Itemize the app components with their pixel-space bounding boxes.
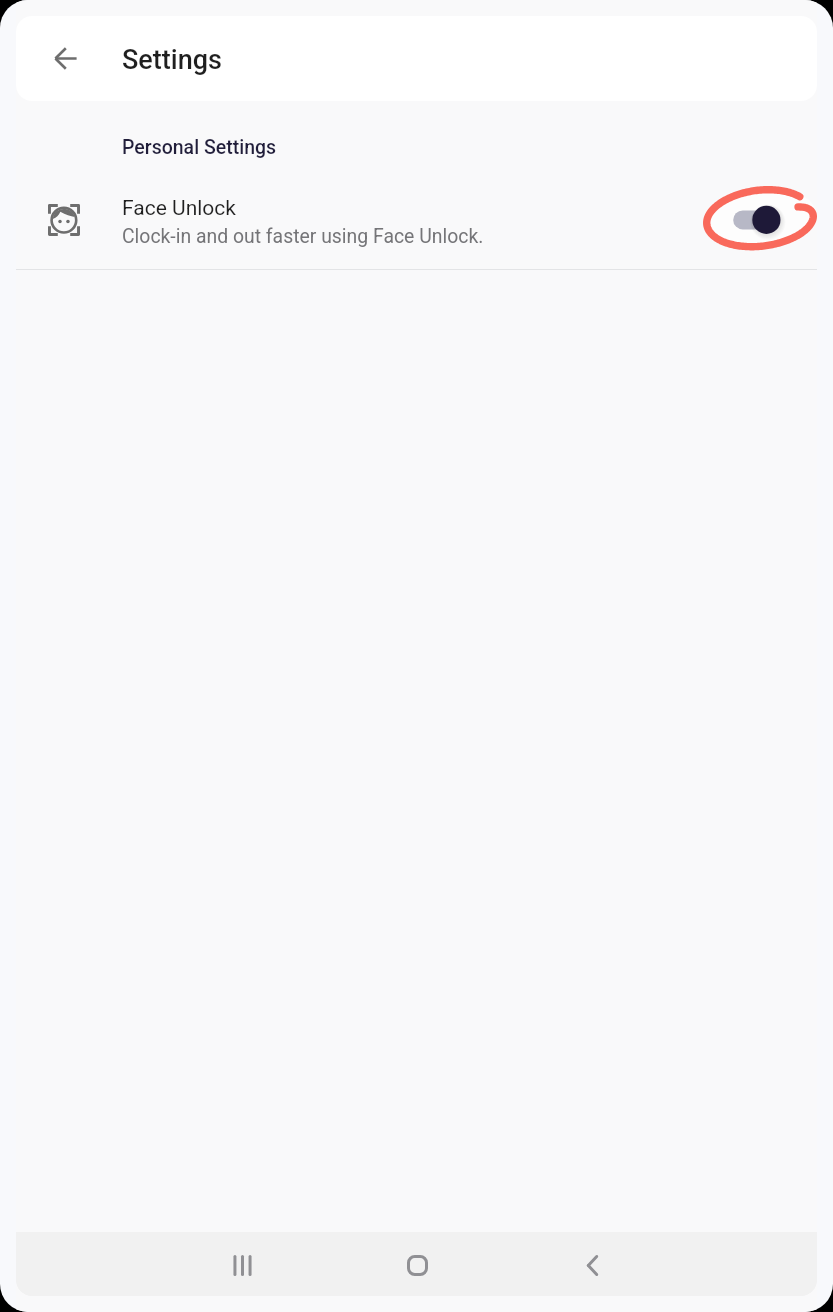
button[interactable]: Face Unlock <box>16 176 817 269</box>
staticText: Face Unlock <box>122 196 236 221</box>
staticText: Clock-in and out faster using Face Unloc… <box>122 225 484 248</box>
button[interactable]: Recent apps <box>218 1241 266 1289</box>
button[interactable]: Face Unlock toggle, on <box>699 180 825 256</box>
staticText: Settings <box>122 44 222 76</box>
staticText: Personal Settings <box>122 136 277 159</box>
button[interactable]: Navigate up <box>44 36 88 80</box>
button[interactable]: Back <box>568 1241 616 1289</box>
button[interactable]: Home <box>393 1241 441 1289</box>
